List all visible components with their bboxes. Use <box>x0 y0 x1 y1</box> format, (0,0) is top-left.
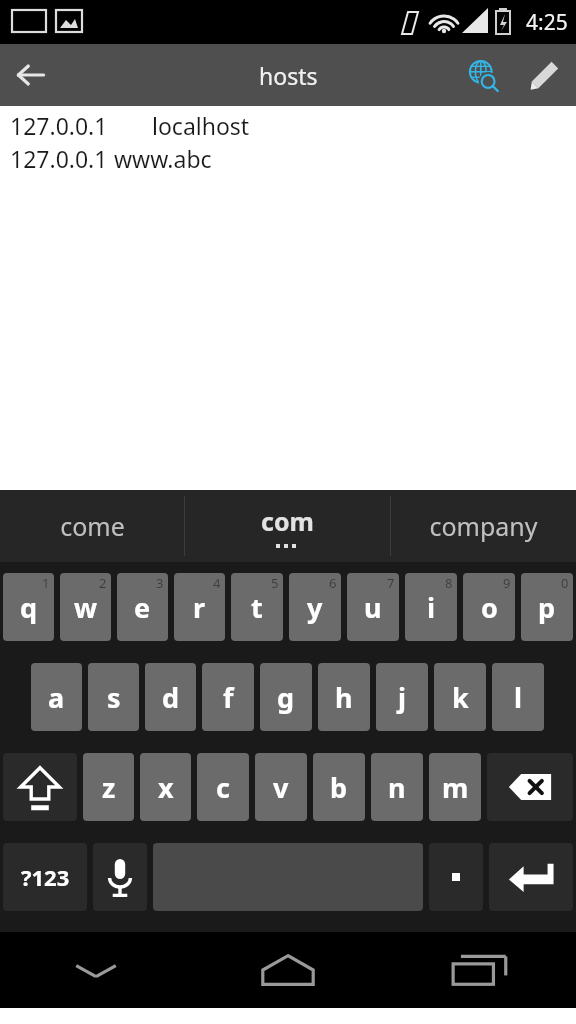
staticText: p <box>538 589 556 626</box>
button[interactable]: com <box>185 490 390 562</box>
staticText: g <box>277 679 295 716</box>
button[interactable]: j <box>376 663 428 731</box>
button[interactable]: i <box>405 573 457 641</box>
staticText: 127.0.0.1 <box>10 143 108 174</box>
staticText: 9 <box>503 574 511 592</box>
button[interactable]: Recent apps <box>384 932 576 1008</box>
button[interactable]: m <box>429 753 481 821</box>
staticText: 3 <box>156 574 164 592</box>
staticText: d <box>162 679 180 716</box>
button[interactable]: q <box>3 573 54 641</box>
staticText: 5 <box>271 574 279 592</box>
button[interactable]: t <box>231 573 283 641</box>
staticText: com <box>261 504 314 538</box>
staticText: 4:25 <box>526 8 568 37</box>
button[interactable]: k <box>434 663 486 731</box>
staticText: i <box>427 589 436 626</box>
staticText: j <box>398 679 407 716</box>
staticText: 6 <box>329 574 337 592</box>
staticText: company <box>429 509 538 543</box>
button[interactable]: y <box>289 573 341 641</box>
staticText: f <box>223 679 234 716</box>
button[interactable]: o <box>463 573 515 641</box>
button[interactable]: company <box>391 490 576 562</box>
button[interactable]: z <box>83 753 134 821</box>
button[interactable]: p <box>521 573 573 641</box>
staticText: hosts <box>259 60 318 91</box>
staticText: n <box>388 769 406 806</box>
button[interactable]: Back <box>0 44 62 106</box>
staticText: y <box>307 589 323 626</box>
button[interactable]: b <box>313 753 365 821</box>
staticText: 4 <box>213 574 221 592</box>
staticText: k <box>452 679 469 716</box>
staticText: 7 <box>387 574 395 592</box>
button[interactable]: Symbols <box>3 843 87 911</box>
button[interactable]: Shift <box>3 753 77 821</box>
staticText: s <box>107 679 121 716</box>
button[interactable]: g <box>260 663 312 731</box>
button[interactable]: l <box>492 663 544 731</box>
button[interactable]: e <box>117 573 168 641</box>
button[interactable]: Home <box>192 932 384 1008</box>
staticText: localhost <box>152 110 250 141</box>
staticText: b <box>330 769 348 806</box>
button[interactable]: come <box>0 490 184 562</box>
staticText: m <box>442 769 469 806</box>
button[interactable]: f <box>202 663 254 731</box>
button[interactable]: d <box>145 663 196 731</box>
staticText: o <box>481 589 498 626</box>
button[interactable]: r <box>174 573 225 641</box>
staticText: 2 <box>99 574 107 592</box>
staticText: www.abc <box>114 143 212 174</box>
staticText: l <box>514 679 523 716</box>
button[interactable]: Search web <box>452 44 514 106</box>
staticText: 1 <box>42 574 50 592</box>
button[interactable]: v <box>255 753 307 821</box>
button[interactable]: Backspace <box>487 753 573 821</box>
staticText: z <box>102 769 116 806</box>
staticText: 0 <box>561 574 569 592</box>
button[interactable]: x <box>140 753 191 821</box>
staticText: u <box>364 589 382 626</box>
staticText: 8 <box>445 574 453 592</box>
button[interactable]: Period <box>429 843 483 911</box>
button[interactable]: a <box>31 663 82 731</box>
staticText: c <box>216 769 230 806</box>
staticText: e <box>134 589 151 626</box>
button[interactable]: Voice input <box>93 843 147 911</box>
staticText: q <box>20 589 38 626</box>
staticText: h <box>335 679 353 716</box>
button[interactable]: h <box>318 663 370 731</box>
button[interactable]: Enter <box>489 843 573 911</box>
staticText: come <box>60 509 125 543</box>
staticText: ?123 <box>21 862 70 892</box>
staticText: x <box>158 769 174 806</box>
button[interactable]: Edit <box>514 44 576 106</box>
button[interactable]: w <box>60 573 111 641</box>
staticText: 127.0.0.1 <box>10 110 108 141</box>
button[interactable]: n <box>371 753 423 821</box>
button[interactable]: Hide keyboard <box>0 932 192 1008</box>
staticText: t <box>251 589 263 626</box>
button[interactable]: s <box>88 663 139 731</box>
button[interactable]: c <box>197 753 249 821</box>
staticText: w <box>74 589 98 626</box>
staticText: v <box>273 769 289 806</box>
staticText: a <box>48 679 65 716</box>
staticText: r <box>193 589 206 626</box>
button[interactable]: u <box>347 573 399 641</box>
